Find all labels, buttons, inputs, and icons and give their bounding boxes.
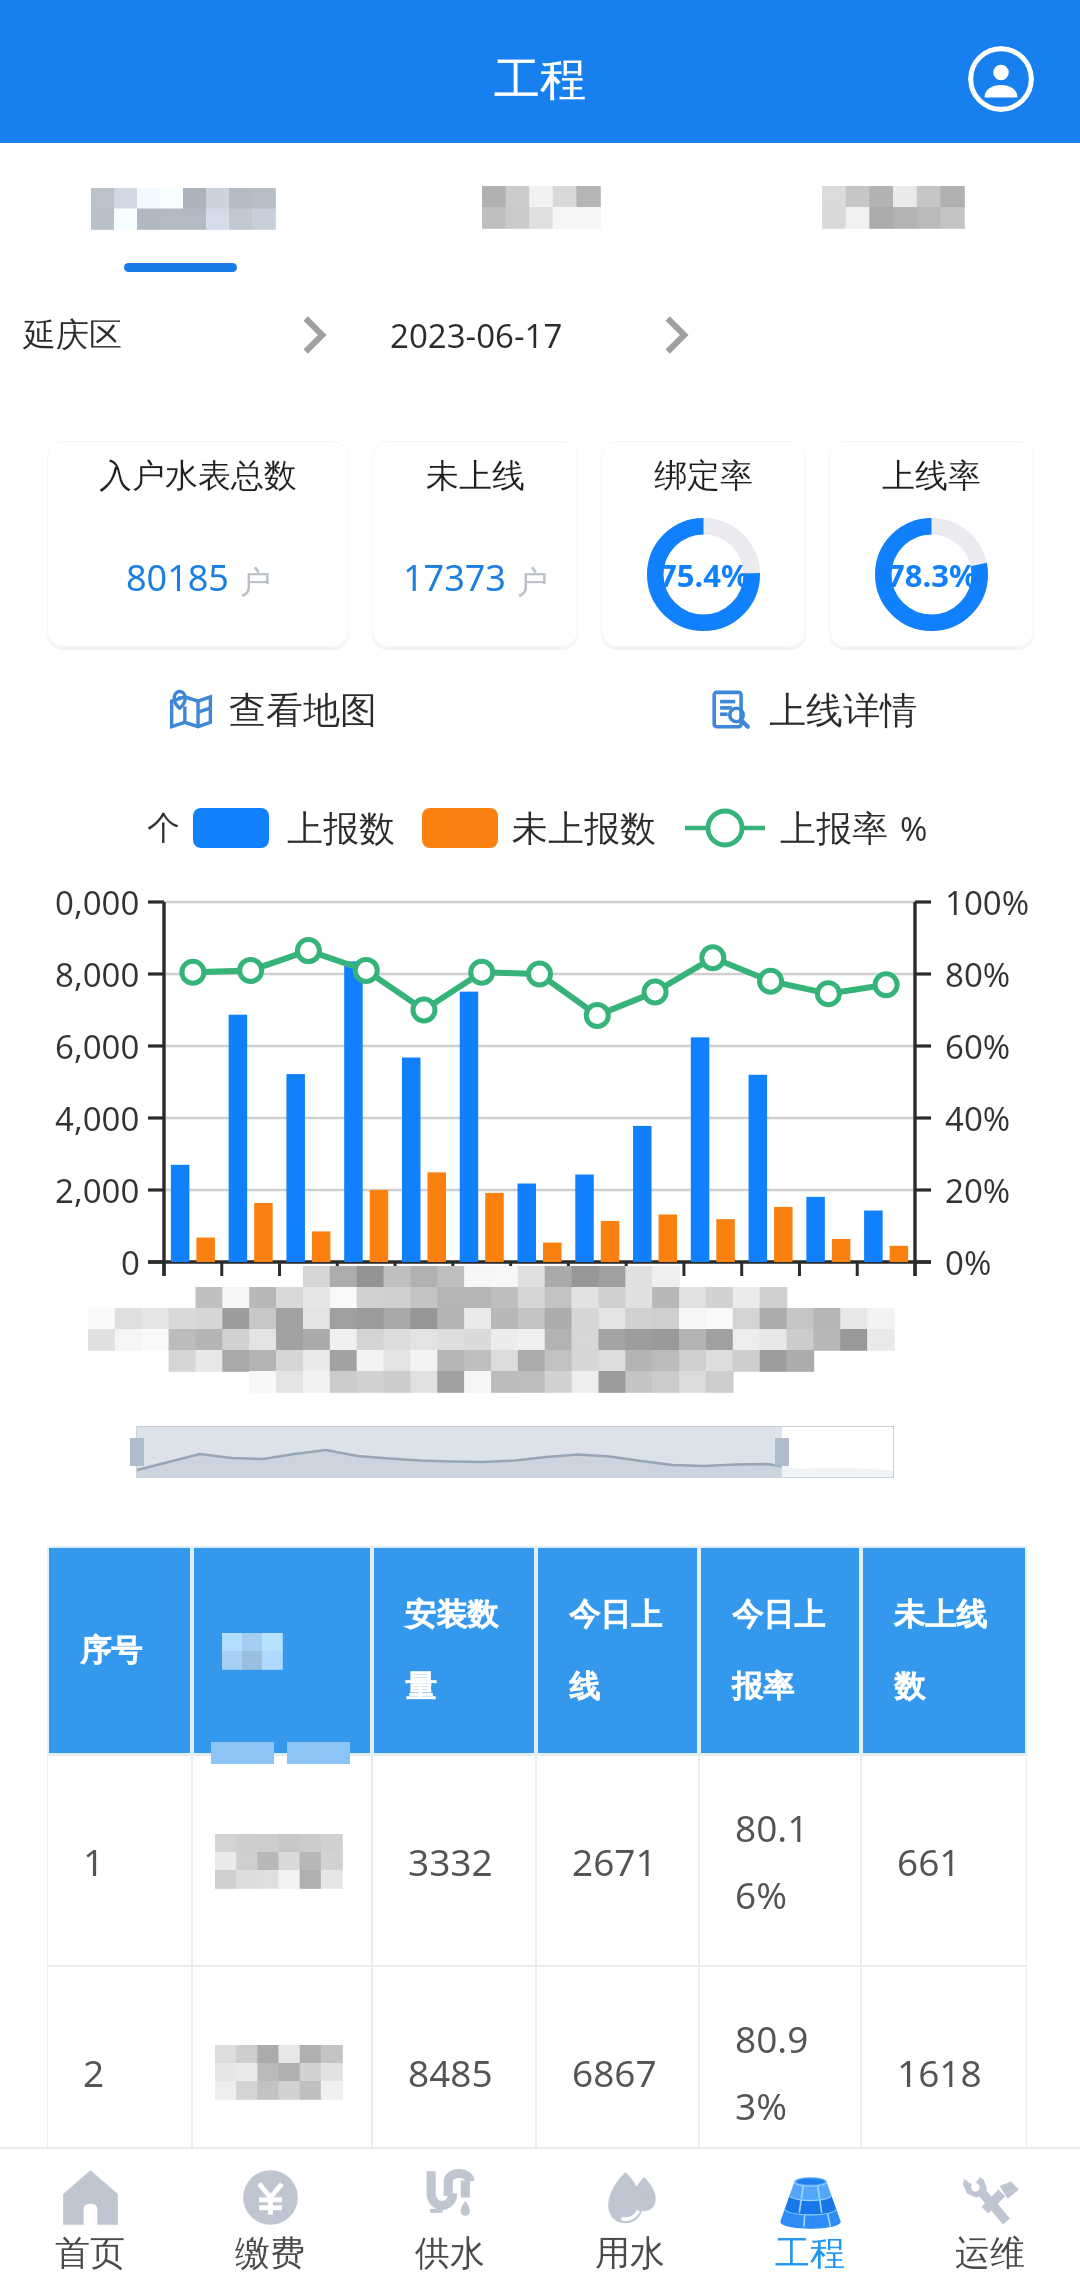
staticText: 工程 [775, 2231, 845, 2275]
button[interactable]: Sort by name [192, 1546, 372, 1755]
staticText: % [900, 806, 928, 851]
staticText: 查看地图 [229, 687, 377, 734]
staticText: 上报数 [287, 806, 395, 851]
staticText: 40% [945, 1096, 1011, 1141]
staticText: 2671 [572, 1836, 679, 1886]
staticText: 75.4% [659, 554, 749, 596]
staticText: 运维 [955, 2231, 1025, 2275]
staticText: 78.3% [887, 554, 977, 596]
button[interactable]: 查看地图 [169, 684, 377, 736]
staticText: 661 [897, 1836, 1007, 1886]
button[interactable]: 今日上报率 [699, 1546, 861, 1755]
button[interactable]: 入户水表总数 [47, 441, 349, 647]
button[interactable]: Toggle 未上报数 series [422, 808, 498, 848]
button[interactable]: 绑定率 [601, 441, 806, 647]
staticText: 6867 [572, 2047, 679, 2097]
button[interactable]: 今日上线 [536, 1546, 699, 1755]
staticText: 1 [83, 1836, 172, 1886]
button[interactable]: 供水 [360, 2149, 540, 2291]
staticText: 2 [83, 2047, 172, 2097]
button[interactable]: Toggle 上报数 series [193, 808, 269, 848]
staticText: 今日上报率 [732, 1595, 846, 1706]
staticText: 80% [945, 952, 1011, 997]
button[interactable]: 用水 [540, 2149, 720, 2291]
button[interactable]: Tab 1 (selected) [70, 170, 296, 280]
staticText: 3332 [408, 1836, 516, 1886]
staticText: 80185 [126, 553, 229, 602]
button[interactable]: Tab 3 [802, 170, 984, 244]
button[interactable]: Chart range slider [136, 1426, 894, 1478]
staticText: 未上线数 [894, 1595, 1012, 1706]
button[interactable]: 上线率 [829, 441, 1034, 647]
button[interactable]: 缴费 [180, 2149, 360, 2291]
staticText: 供水 [415, 2231, 485, 2275]
staticText: 0,000 [55, 880, 140, 925]
button[interactable]: 安装数量 [372, 1546, 536, 1755]
staticText: 8485 [408, 2047, 516, 2097]
staticText: 80.9 3% [735, 2013, 841, 2130]
staticText: 上线详情 [769, 687, 917, 734]
staticText: 0 [121, 1240, 140, 1285]
staticText: 100% [945, 880, 1030, 925]
staticText: 2,000 [55, 1168, 140, 1213]
staticText: 上报率 [780, 806, 888, 851]
button[interactable]: 1 [47, 1755, 1027, 1966]
staticText: 17373 [403, 553, 506, 602]
staticText: 1618 [897, 2047, 1007, 2097]
button[interactable]: 运维 [900, 2149, 1080, 2291]
staticText: 60% [945, 1024, 1011, 1069]
staticText: 工程 [494, 51, 586, 109]
button[interactable]: 首页 [0, 2149, 180, 2291]
staticText: 20% [945, 1168, 1011, 1213]
staticText: 缴费 [235, 2231, 305, 2275]
staticText: 绑定率 [654, 455, 753, 497]
button[interactable]: 未上线 [372, 441, 578, 647]
staticText: 户 [517, 563, 548, 602]
staticText: 8,000 [55, 952, 140, 997]
staticText: 未上线 [426, 455, 525, 497]
button[interactable]: 未上线数 [861, 1546, 1027, 1755]
staticText: 上线率 [882, 455, 981, 497]
staticText: 2023-06-17 [390, 313, 563, 358]
button[interactable]: 延庆区 [0, 299, 360, 371]
staticText: 6,000 [55, 1024, 140, 1069]
button[interactable]: 工程 [720, 2149, 900, 2291]
staticText: 序号 [80, 1631, 142, 1670]
staticText: 今日上线 [569, 1595, 684, 1706]
staticText: 0% [945, 1240, 992, 1285]
button[interactable]: Tab 2 [462, 170, 620, 244]
staticText: 80.1 6% [735, 1802, 841, 1919]
button[interactable]: Account [968, 46, 1034, 112]
button[interactable]: 2 [47, 1966, 1027, 2147]
button[interactable]: 2023-06-17 [360, 299, 720, 371]
staticText: 延庆区 [23, 314, 122, 356]
staticText: 户 [240, 563, 271, 602]
staticText: 4,000 [55, 1096, 140, 1141]
button[interactable]: 上线详情 [710, 684, 917, 736]
staticText: 安装数量 [405, 1595, 521, 1706]
staticText: 个 [147, 807, 180, 849]
button[interactable]: 序号 [47, 1546, 192, 1755]
staticText: 入户水表总数 [99, 455, 297, 497]
staticText: 未上报数 [512, 806, 656, 851]
staticText: 用水 [595, 2231, 665, 2275]
staticText: 首页 [55, 2231, 125, 2275]
